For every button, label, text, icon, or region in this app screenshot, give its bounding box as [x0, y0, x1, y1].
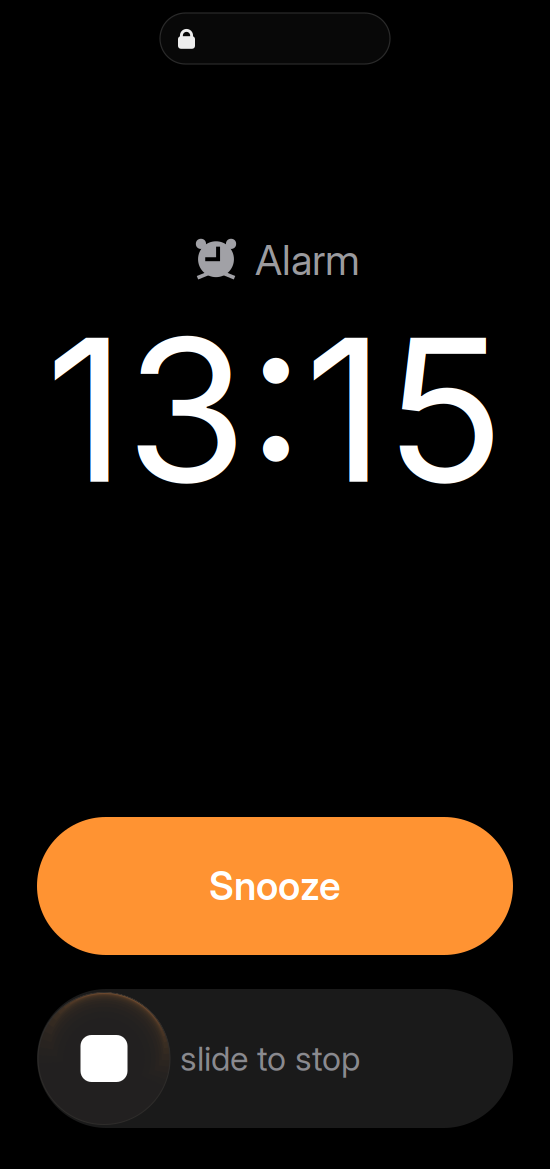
staticText: slide to stop — [180, 1038, 360, 1079]
staticText: Alarm — [255, 235, 360, 285]
button[interactable]: Slide to stop alarm — [37, 989, 513, 1128]
staticText: Snooze — [209, 863, 341, 909]
button[interactable]: Snooze — [37, 817, 513, 955]
staticText: 13:15 — [45, 291, 504, 529]
